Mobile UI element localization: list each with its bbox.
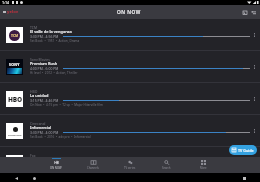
button[interactable]: CINECANAL xyxy=(0,115,260,147)
staticText: Infomercial xyxy=(30,125,52,130)
button[interactable]: Sort xyxy=(249,8,258,17)
staticText: ON NOW xyxy=(50,166,62,170)
staticText: yelov xyxy=(7,9,19,15)
staticText: Channels xyxy=(87,166,99,170)
button[interactable]: Fox xyxy=(0,147,260,157)
staticText: TCM xyxy=(11,33,19,38)
button[interactable]: Recent apps xyxy=(240,174,248,182)
staticText: Hi level • 2012 • Action, Thriller xyxy=(30,71,78,75)
staticText: 3:15 PM - 4:46 PM xyxy=(30,98,59,103)
staticText: HBO xyxy=(30,89,38,93)
button[interactable]: Back xyxy=(12,174,20,182)
button[interactable]: HBO xyxy=(0,83,260,115)
button[interactable]: More options xyxy=(250,95,258,103)
staticText: Sony Movies xyxy=(30,57,50,61)
button[interactable]: Search xyxy=(148,157,185,173)
staticText: More xyxy=(200,166,207,170)
button[interactable]: SONY xyxy=(0,51,260,83)
staticText: Cinecanal xyxy=(30,121,46,125)
staticText: On Now • 4:15 pm • T2 sp • Major Hitervi… xyxy=(30,103,103,107)
staticText: TCM xyxy=(30,25,38,29)
button[interactable]: ON NOW xyxy=(38,157,74,173)
staticText: Fox xyxy=(30,153,36,157)
staticText: SONY xyxy=(9,62,20,67)
staticText: HBO xyxy=(8,95,22,104)
button[interactable]: More options xyxy=(250,63,258,71)
staticText: El valle de la venganza xyxy=(30,29,72,34)
button[interactable]: More options xyxy=(250,31,258,39)
staticText: La unidad xyxy=(30,93,49,98)
staticText: Set Book • 1951 • Action, Drama xyxy=(30,39,80,43)
button[interactable]: TCM xyxy=(0,19,260,51)
button[interactable]: TV Guide xyxy=(229,145,257,155)
button[interactable]: TV series xyxy=(111,157,148,173)
staticText: ON NOW xyxy=(117,9,141,16)
button[interactable]: More options xyxy=(250,127,258,135)
staticText: TV Guide xyxy=(238,148,254,153)
staticText: 3:30 PM - 4:00 PM xyxy=(30,130,59,135)
button[interactable]: Channels xyxy=(74,157,111,173)
button[interactable]: Home xyxy=(30,174,38,182)
staticText: 4:00 PM - 6:00 PM xyxy=(30,66,59,71)
button[interactable]: More xyxy=(185,157,222,173)
staticText: TV series xyxy=(124,166,136,170)
staticText: CINECANAL xyxy=(8,133,22,136)
staticText: 1:14 xyxy=(2,0,10,5)
staticText: 3:30 PM - 4:56 PM xyxy=(30,34,59,39)
button[interactable]: Cast xyxy=(240,8,249,17)
staticText: Premium Rush xyxy=(30,61,58,66)
staticText: Set Book • 2016 • adv pro • Infomercial xyxy=(30,135,91,139)
staticText: Search xyxy=(162,166,171,170)
